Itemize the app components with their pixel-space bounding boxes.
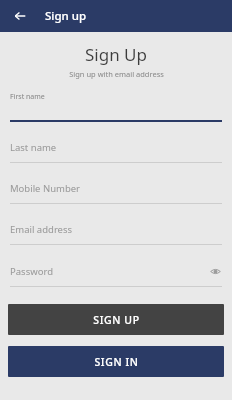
staticText: Password [10,265,208,278]
staticText: Mobile Number [10,182,222,195]
button[interactable]: SIGN IN [8,346,224,377]
staticText: Sign up with email address [69,69,164,79]
staticText: Last name [10,141,222,154]
button[interactable]: Mobile Number [0,182,232,204]
staticText: SIGN UP [93,313,140,327]
button[interactable]: Back [8,4,32,28]
button[interactable]: First name [0,92,232,122]
staticText: Sign Up [85,43,147,66]
staticText: First name [10,92,45,102]
button[interactable]: Show password [208,264,222,278]
staticText: Sign up [45,8,87,24]
button[interactable]: Email address [0,223,232,245]
staticText: Email address [10,223,222,236]
button[interactable]: SIGN UP [8,304,224,335]
staticText: SIGN IN [94,355,139,369]
button[interactable]: Last name [0,141,232,163]
button[interactable]: Password [0,264,232,287]
